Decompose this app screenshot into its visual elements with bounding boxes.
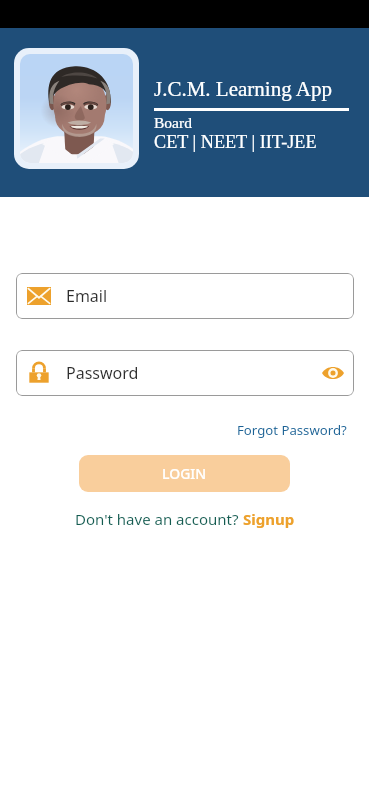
staticText: Board — [154, 114, 192, 131]
staticText: LOGIN — [162, 464, 207, 483]
button[interactable]: Forgot Password? — [237, 421, 347, 439]
staticText: CET | NEET | IIT-JEE — [154, 132, 317, 152]
button[interactable]: Show password — [312, 352, 354, 394]
staticText: Email — [66, 285, 108, 307]
staticText: Signup — [243, 509, 295, 529]
staticText: J.C.M. Learning App — [154, 77, 332, 100]
button[interactable]: Password — [16, 350, 354, 396]
button[interactable]: Email — [16, 273, 354, 319]
staticText: Password — [66, 362, 139, 384]
staticText: Don't have an account? — [75, 509, 243, 529]
staticText: Forgot Password? — [237, 421, 347, 439]
button[interactable]: LOGIN — [79, 455, 290, 492]
button[interactable]: Signup — [243, 509, 295, 529]
